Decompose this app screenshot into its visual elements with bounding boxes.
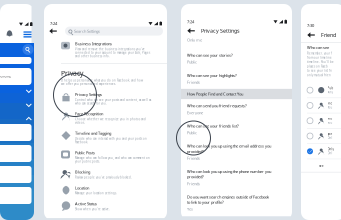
staticText: Who can look you up using the phone numb… [187,169,271,174]
staticText: Show when you're active. [75,207,110,211]
button[interactable]: Business Integrations [44,38,167,61]
staticText: 7:24 [187,19,194,24]
button[interactable]: Notifications [5,30,13,39]
staticText: It helps us personalize what you do on F… [61,79,143,82]
staticText: Manage your location settings. [75,191,117,195]
staticText: Public Posts [75,150,95,155]
staticText: to link to your profile? [187,200,224,205]
staticText: Review people you've previously blocked. [75,176,132,179]
staticText: Location [75,185,89,190]
staticText: Facebook. [75,140,88,144]
staticText: provided? [187,149,204,154]
staticText: Frie [327,102,332,105]
staticText: Decide who can interact with you and you… [75,137,147,140]
staticText: Who can see your friends list? [187,123,239,129]
staticText: Remember, your f [307,52,332,55]
staticText: Everyone [187,110,203,115]
button[interactable]: Public Posts [44,147,167,166]
staticText: Who can see [307,45,329,50]
button[interactable]: Back [187,28,195,34]
staticText: Onl [327,136,332,140]
staticText: Privacy [61,69,83,78]
staticText: xperience [0,75,11,78]
staticText: Only [327,147,333,151]
button[interactable]: Blocking [44,166,167,182]
button[interactable]: Who can look you up using the phone numb… [181,165,275,190]
staticText: Blocking [75,169,90,175]
staticText: How People Find and Contact You [187,91,243,97]
staticText: to see your list fri [307,69,332,72]
button[interactable]: Face Recognition [44,108,167,128]
staticText: we offer you personalized experiences. [61,82,116,86]
button[interactable]: Location [44,182,167,198]
staticText: Spe [327,132,332,136]
staticText: from our Timeline [307,56,332,59]
staticText: Pub [327,86,333,90]
staticText: Friend [321,31,336,39]
button[interactable]: Pub [301,83,341,98]
button[interactable]: Privacy Settings [44,89,167,108]
staticText: Do you want search engines outside of Fa… [187,194,269,200]
staticText: 7:24 [50,21,57,26]
staticText: Frie [327,117,332,120]
staticText: Manage who can follow you, and who can c… [75,156,150,160]
staticText: provided? [187,174,204,179]
staticText: Privacy Settings [75,92,102,97]
staticText: Friends [187,79,200,85]
staticText: 7:30 [307,23,314,28]
button[interactable]: Back [307,32,315,38]
staticText: places on Faceb [307,65,328,68]
staticText: Who can look you up using the email addr… [187,143,271,149]
staticText: Control who can see your posts and conte… [75,98,151,102]
staticText: Who can send you friend requests? [187,103,247,108]
staticText: Who can see your stories? [187,53,233,58]
staticText: only mutual frien [307,73,331,77]
button[interactable]: Search Settings [65,27,163,36]
staticText: Privacy Settings [201,27,240,34]
button[interactable]: Active Status [44,198,167,214]
staticText: Friends [187,155,200,161]
button[interactable]: Back [49,28,57,34]
button[interactable]: Who can look you up using the email addr… [181,139,275,165]
button[interactable]: Who can see your stories? [181,49,237,69]
staticText: Active Status [75,201,97,206]
staticText: who can search for you. [75,102,107,105]
staticText: Only me [187,37,202,43]
staticText: Timeline and Tagging [75,131,111,136]
staticText: connected to your account to manage your… [75,51,150,54]
button[interactable]: Spe [301,129,341,144]
button[interactable]: Who can see your friends list? [181,119,243,139]
staticText: and other business info. [75,54,110,58]
button[interactable]: Frie [301,98,341,113]
button[interactable]: Who can see your highlights? [181,69,241,89]
button[interactable]: Menu [23,31,31,38]
staticText: Choose whether we recognize you in photo… [75,117,146,125]
staticText: Search Settings [74,28,100,34]
staticText: You [327,121,332,124]
staticText: Public [187,130,197,135]
button[interactable]: Search [22,44,33,55]
staticText: Friends [187,181,200,186]
button[interactable]: Who can send you friend requests? [181,99,251,119]
staticText: Any [327,90,332,94]
staticText: See [319,164,324,168]
staticText: View and remove the business integration… [75,47,145,51]
staticText: Business Integrations [75,41,112,46]
button[interactable]: Do you want search engines outside of Fa… [181,190,273,216]
staticText: your public posts. [75,160,100,163]
staticText: timeline. You'll be [307,60,334,64]
staticText: Public [187,59,197,65]
button[interactable]: Only [301,144,341,159]
staticText: You [327,106,332,109]
staticText: Face Recognition [75,111,103,116]
staticText: Who can see your highlights? [187,73,237,78]
staticText: Yes [187,206,193,212]
staticText: Onl [327,151,332,155]
button[interactable]: Frie [301,113,341,129]
button[interactable]: Timeline and Tagging [44,128,167,147]
